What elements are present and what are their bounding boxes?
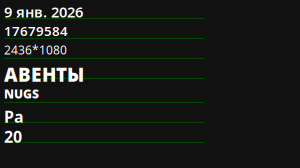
staticText: 9 янв. 2026 [4, 2, 83, 21]
staticText: АВЕНТЫ [4, 62, 84, 87]
staticText: 20 [4, 126, 22, 147]
staticText: Pa [4, 106, 24, 127]
staticText: NUGS [4, 86, 39, 102]
staticText: 17679584 [4, 22, 68, 40]
staticText: 2436*1080 [4, 42, 67, 58]
